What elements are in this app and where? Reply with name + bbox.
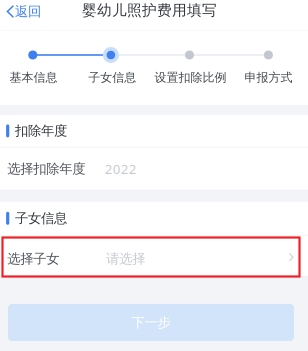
staticText: 子女信息: [15, 210, 67, 226]
staticText: 选择扣除年度: [7, 161, 85, 177]
staticText: 请选择: [106, 250, 145, 267]
button[interactable]: 下一步: [8, 304, 294, 341]
staticText: 扣除年度: [15, 123, 67, 139]
staticText: 婴幼儿照护费用填写: [82, 1, 217, 19]
staticText: 设置扣除比例: [154, 70, 226, 85]
button[interactable]: 选择扣除年度: [0, 148, 308, 190]
staticText: 2022: [105, 160, 137, 178]
button[interactable]: 返回: [0, 0, 49, 23]
staticText: 返回: [15, 3, 41, 20]
button[interactable]: 选择子女: [0, 236, 308, 276]
staticText: 选择子女: [7, 250, 59, 267]
staticText: 基本信息: [9, 70, 57, 85]
staticText: 子女信息: [88, 70, 136, 85]
staticText: 下一步: [131, 314, 170, 331]
staticText: 申报方式: [244, 70, 292, 85]
